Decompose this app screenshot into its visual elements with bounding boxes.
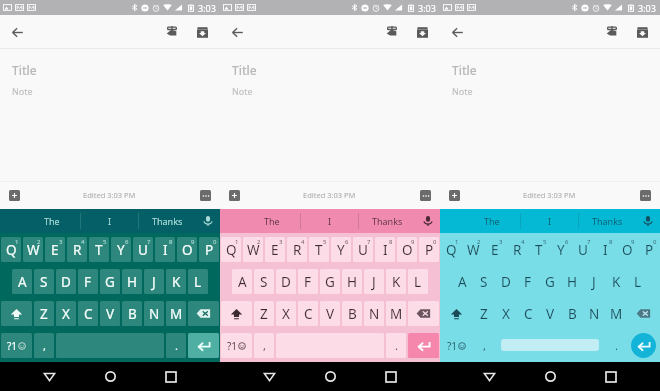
button[interactable]: Back — [476, 363, 503, 390]
button[interactable]: Symbols — [1, 333, 32, 358]
button[interactable]: B — [562, 301, 582, 326]
button[interactable]: Back — [256, 363, 283, 390]
button[interactable]: The — [24, 209, 80, 233]
button[interactable]: N — [584, 301, 604, 326]
button[interactable]: W — [23, 237, 43, 262]
button[interactable]: X — [276, 301, 296, 326]
button[interactable]: V — [100, 301, 120, 326]
button[interactable]: U — [573, 237, 593, 262]
button[interactable]: Pin — [378, 15, 405, 49]
button[interactable]: More options — [200, 190, 211, 201]
button[interactable]: L — [628, 269, 648, 294]
button[interactable]: U — [353, 237, 373, 262]
button[interactable]: X — [56, 301, 76, 326]
button[interactable]: Shift — [1, 301, 32, 326]
button[interactable]: P — [639, 237, 659, 262]
button[interactable]: Enter — [408, 333, 439, 358]
button[interactable]: T — [89, 237, 109, 262]
button[interactable]: Archive — [629, 15, 656, 49]
button[interactable]: F — [298, 269, 318, 294]
button[interactable]: Q — [441, 237, 461, 262]
button[interactable]: Back — [36, 363, 63, 390]
button[interactable]: More options — [420, 190, 431, 201]
button[interactable]: Back — [440, 15, 474, 49]
button[interactable]: Y — [551, 237, 571, 262]
button[interactable]: M — [606, 301, 626, 326]
button[interactable]: S — [254, 269, 274, 294]
button[interactable]: Enter — [188, 333, 219, 358]
button[interactable]: Pin — [598, 15, 625, 49]
button[interactable]: L — [188, 269, 208, 294]
button[interactable]: Recents — [157, 363, 184, 390]
button[interactable]: S — [34, 269, 54, 294]
button[interactable]: U — [133, 237, 153, 262]
button[interactable]: Symbols — [441, 333, 472, 358]
button[interactable]: M — [386, 301, 406, 326]
button[interactable]: More options — [640, 190, 651, 201]
button[interactable]: C — [518, 301, 538, 326]
button[interactable]: Period — [606, 333, 626, 358]
button[interactable]: K — [386, 269, 406, 294]
button[interactable]: Comma — [474, 333, 494, 358]
button[interactable]: Archive — [189, 15, 216, 49]
button[interactable]: D — [56, 269, 76, 294]
button[interactable]: G — [320, 269, 340, 294]
button[interactable]: Thanks — [579, 209, 636, 233]
button[interactable]: B — [342, 301, 362, 326]
button[interactable]: Home — [317, 363, 344, 390]
button[interactable]: Home — [537, 363, 564, 390]
button[interactable]: I — [301, 209, 358, 233]
button[interactable]: Backspace — [628, 301, 659, 326]
button[interactable]: H — [122, 269, 142, 294]
button[interactable]: A — [452, 269, 472, 294]
button[interactable]: B — [122, 301, 142, 326]
button[interactable]: K — [166, 269, 186, 294]
button[interactable]: P — [199, 237, 219, 262]
button[interactable]: I — [81, 209, 138, 233]
button[interactable]: S — [474, 269, 494, 294]
button[interactable]: E — [485, 237, 505, 262]
button[interactable]: J — [144, 269, 164, 294]
button[interactable]: Add — [449, 190, 460, 201]
button[interactable]: Y — [111, 237, 131, 262]
button[interactable]: Z — [34, 301, 54, 326]
button[interactable]: R — [507, 237, 527, 262]
button[interactable]: Add — [229, 190, 240, 201]
button[interactable]: F — [518, 269, 538, 294]
button[interactable]: I — [521, 209, 578, 233]
button[interactable]: Home — [97, 363, 124, 390]
button[interactable]: J — [584, 269, 604, 294]
button[interactable]: G — [100, 269, 120, 294]
button[interactable]: R — [287, 237, 307, 262]
button[interactable]: Symbols — [221, 333, 252, 358]
button[interactable]: P — [419, 237, 439, 262]
button[interactable]: Z — [474, 301, 494, 326]
button[interactable]: Backspace — [408, 301, 439, 326]
button[interactable]: O — [177, 237, 197, 262]
button[interactable]: D — [496, 269, 516, 294]
button[interactable]: E — [45, 237, 65, 262]
button[interactable]: H — [562, 269, 582, 294]
button[interactable]: W — [463, 237, 483, 262]
button[interactable]: L — [408, 269, 428, 294]
button[interactable]: Period — [386, 333, 406, 358]
button[interactable]: Y — [331, 237, 351, 262]
button[interactable]: T — [529, 237, 549, 262]
button[interactable]: H — [342, 269, 362, 294]
button[interactable]: X — [496, 301, 516, 326]
button[interactable]: Z — [254, 301, 274, 326]
button[interactable]: Q — [221, 237, 241, 262]
button[interactable]: Voice input — [196, 209, 220, 233]
button[interactable]: C — [298, 301, 318, 326]
button[interactable]: Voice input — [636, 209, 660, 233]
button[interactable]: M — [166, 301, 186, 326]
button[interactable]: Q — [1, 237, 21, 262]
button[interactable]: O — [617, 237, 637, 262]
button[interactable]: Thanks — [139, 209, 196, 233]
button[interactable]: Shift — [221, 301, 252, 326]
button[interactable]: Recents — [377, 363, 404, 390]
button[interactable]: Thanks — [359, 209, 416, 233]
button[interactable]: I — [375, 237, 395, 262]
